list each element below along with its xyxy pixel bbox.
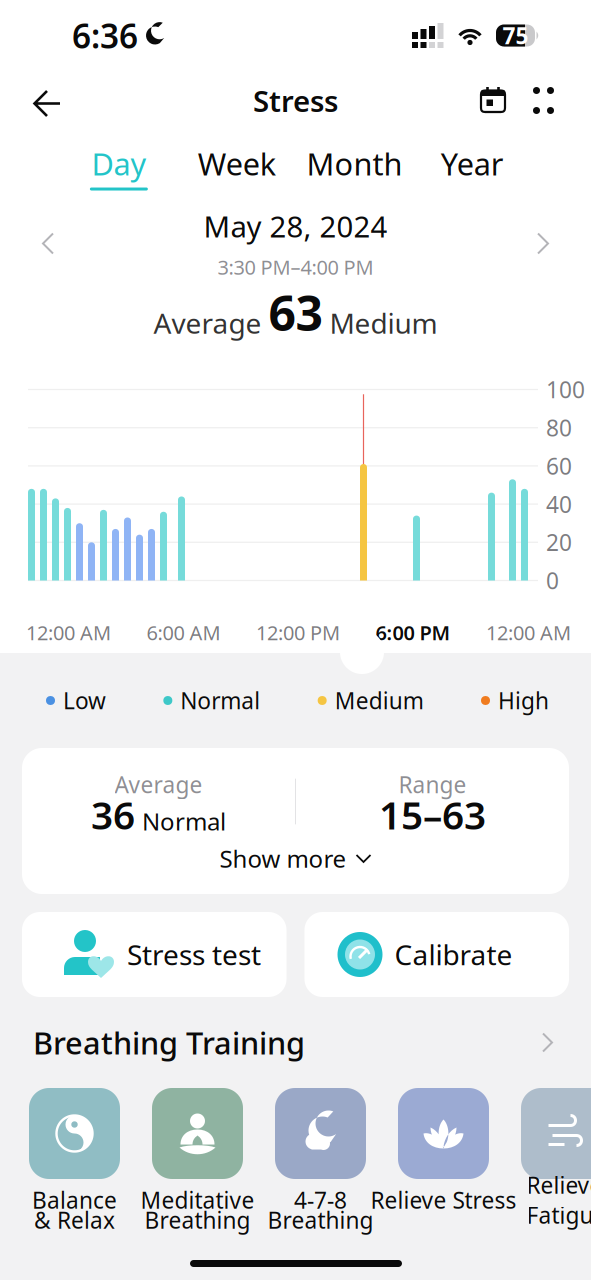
- staticText: & Relax: [34, 1205, 115, 1235]
- button[interactable]: More options: [525, 79, 562, 122]
- button[interactable]: Year: [413, 124, 531, 201]
- button[interactable]: Relieve Stress: [382, 1088, 505, 1240]
- staticText: Show more: [219, 843, 346, 874]
- staticText: 36: [91, 789, 135, 840]
- staticText: 63: [268, 281, 322, 344]
- staticText: Breathing: [144, 1205, 250, 1235]
- staticText: May 28, 2024: [203, 207, 387, 246]
- staticText: 6:00 AM: [146, 619, 220, 646]
- button[interactable]: Show more: [22, 829, 569, 887]
- staticText: Range: [398, 769, 466, 799]
- staticText: High: [498, 685, 549, 715]
- button[interactable]: Stress test: [22, 912, 286, 997]
- staticText: 12:00 PM: [256, 619, 340, 646]
- button[interactable]: Calibrate: [304, 912, 569, 997]
- staticText: 20: [546, 527, 572, 557]
- staticText: Meditative: [140, 1185, 254, 1215]
- staticText: Breathing: [267, 1205, 373, 1235]
- button[interactable]: See all Breathing Training: [534, 1024, 561, 1060]
- staticText: Day: [91, 143, 146, 184]
- staticText: 40: [546, 489, 572, 519]
- button[interactable]: Balance: [13, 1088, 136, 1240]
- staticText: Year: [441, 143, 504, 184]
- staticText: 100: [546, 374, 585, 404]
- staticText: 75: [502, 20, 528, 50]
- staticText: Average: [153, 304, 261, 341]
- button[interactable]: Meditative: [136, 1088, 259, 1240]
- staticText: Normal: [142, 805, 226, 837]
- staticText: 12:00 AM: [26, 619, 111, 646]
- button[interactable]: Back: [25, 78, 69, 122]
- button[interactable]: Month: [295, 124, 413, 201]
- staticText: 60: [546, 451, 572, 481]
- staticText: Normal: [180, 685, 260, 715]
- staticText: Breathing Training: [33, 1022, 305, 1063]
- button[interactable]: Day: [60, 124, 178, 201]
- button[interactable]: Previous day: [30, 220, 66, 266]
- staticText: 15–63: [379, 789, 486, 840]
- button[interactable]: Relieve Fatigue: [505, 1088, 591, 1240]
- staticText: Low: [63, 685, 106, 715]
- staticText: 6:36: [72, 13, 138, 58]
- staticText: Balance: [32, 1185, 117, 1215]
- staticText: Medium: [335, 685, 424, 715]
- staticText: Stress test: [127, 936, 261, 973]
- button[interactable]: 4-7-8: [259, 1088, 382, 1240]
- staticText: 0: [546, 565, 559, 595]
- staticText: 4-7-8: [294, 1185, 347, 1215]
- staticText: Month: [306, 143, 402, 184]
- staticText: Stress: [253, 81, 338, 120]
- staticText: Relieve Fatigue: [526, 1170, 591, 1230]
- button[interactable]: Week: [178, 124, 296, 201]
- staticText: Medium: [329, 304, 437, 341]
- staticText: 6:00 PM: [375, 619, 450, 646]
- button[interactable]: Calendar: [472, 79, 514, 122]
- staticText: 12:00 AM: [486, 619, 571, 646]
- staticText: Calibrate: [394, 936, 512, 973]
- staticText: 80: [546, 413, 572, 443]
- staticText: Average: [114, 769, 202, 799]
- staticText: Week: [198, 143, 276, 184]
- button[interactable]: Next day: [525, 220, 561, 266]
- staticText: Relieve Stress: [370, 1185, 516, 1215]
- staticText: 3:30 PM–4:00 PM: [217, 254, 373, 280]
